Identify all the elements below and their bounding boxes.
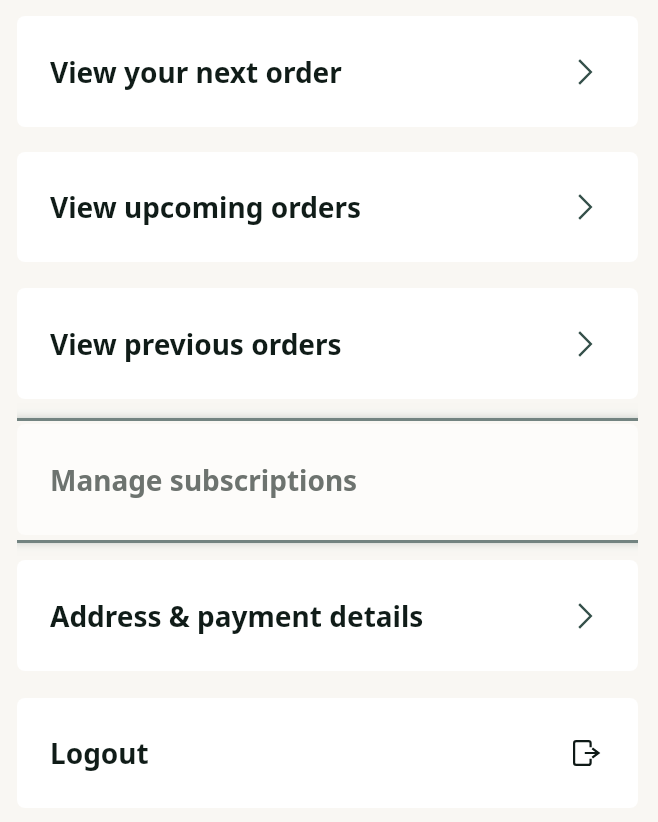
staticText: View previous orders [50, 325, 342, 363]
button[interactable]: Address & payment details [17, 560, 638, 671]
button[interactable]: View upcoming orders [17, 152, 638, 262]
button[interactable]: Manage subscriptions [17, 424, 638, 535]
staticText: Address & payment details [50, 597, 424, 635]
staticText: View upcoming orders [50, 188, 362, 226]
staticText: Logout [50, 734, 149, 772]
other: Open [578, 59, 592, 85]
other: Logout [573, 740, 600, 766]
button[interactable]: View previous orders [17, 288, 638, 399]
button[interactable]: Logout [17, 698, 638, 808]
other: Open [578, 331, 592, 357]
staticText: View your next order [50, 53, 342, 91]
staticText: Manage subscriptions [50, 461, 358, 499]
other: Open [578, 194, 592, 220]
other: Open [578, 603, 592, 629]
button[interactable]: View your next order [17, 16, 638, 127]
